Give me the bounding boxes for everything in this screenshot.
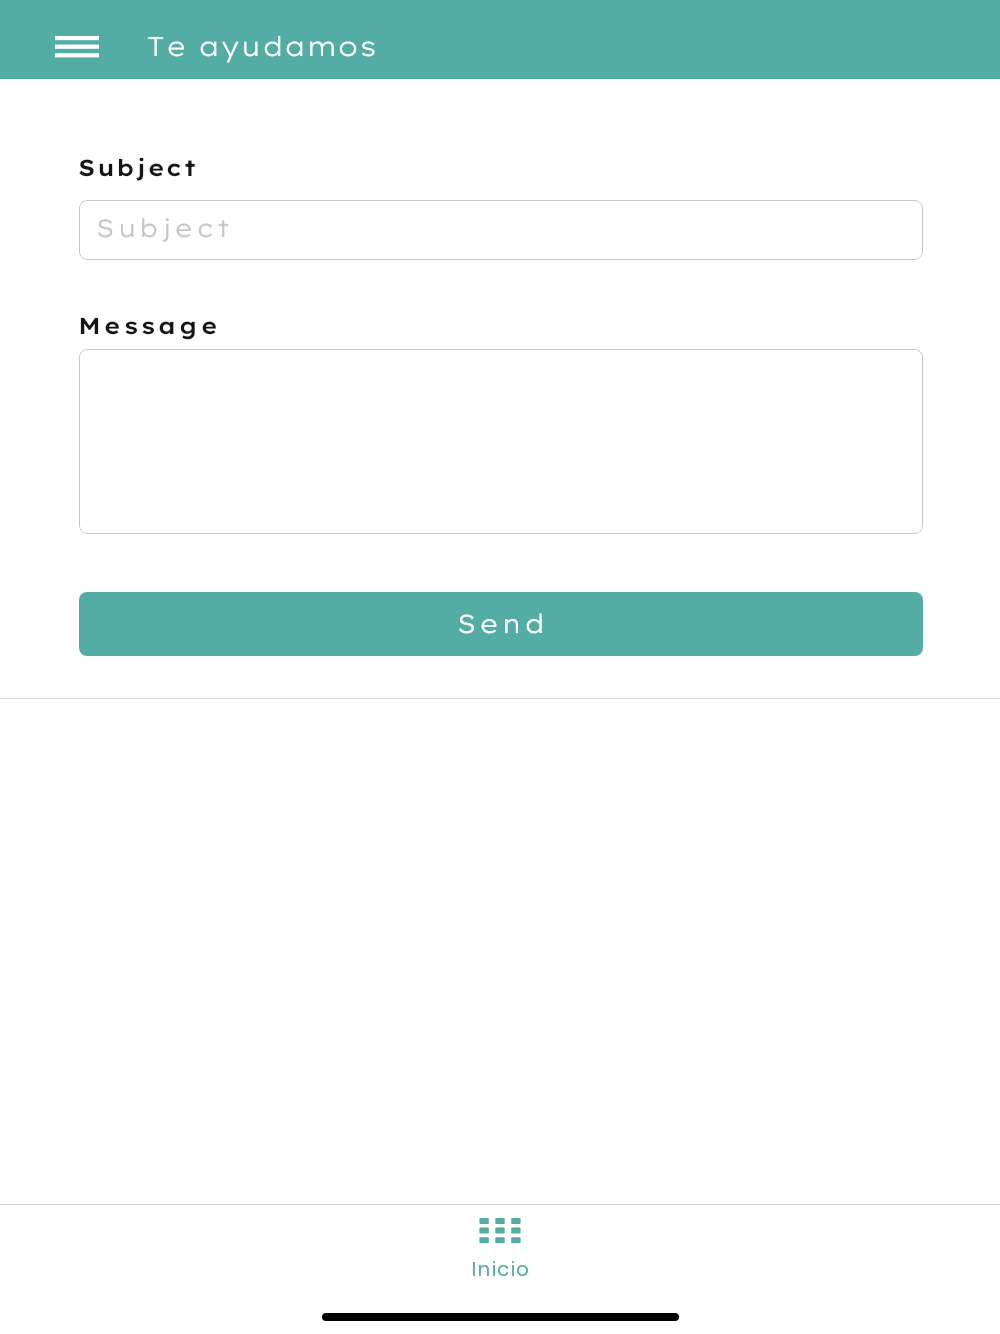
button[interactable]: Send xyxy=(79,592,923,656)
other: Message xyxy=(0,0,1000,1334)
other: Subject xyxy=(0,0,1000,1334)
button[interactable]: Subject input field xyxy=(79,200,923,260)
button[interactable]: Inicio xyxy=(0,1205,1000,1305)
button[interactable]: Message input field xyxy=(79,349,923,534)
other: Te ayudamos xyxy=(0,0,1000,79)
button[interactable]: Open navigation menu xyxy=(50,12,104,68)
